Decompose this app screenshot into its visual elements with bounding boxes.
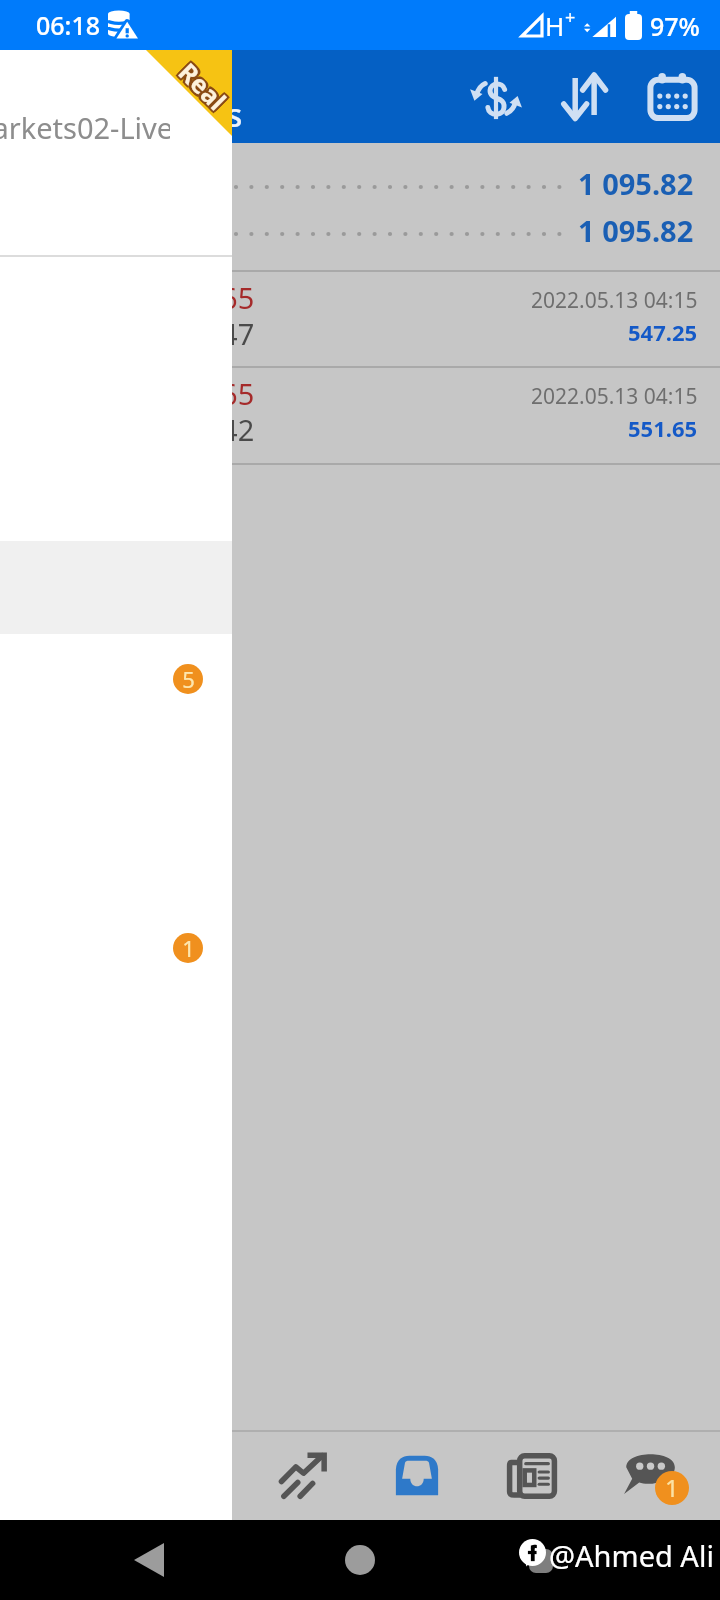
button[interactable]: Messages [592, 1432, 720, 1520]
staticText: + [565, 5, 576, 30]
staticText: ICMarkets02-Live [0, 108, 170, 147]
staticText: 1 [665, 1471, 679, 1504]
staticText: Real [172, 52, 234, 114]
button[interactable]: Sort [540, 53, 628, 141]
staticText: 551.65 [628, 413, 698, 443]
staticText: 1 [182, 933, 195, 963]
button[interactable]: Back [134, 1543, 164, 1577]
button[interactable]: News [472, 1432, 592, 1520]
staticText: 1 095.82 [578, 164, 694, 203]
staticText: 1 095.82 [578, 211, 694, 250]
staticText: Real [175, 55, 237, 117]
staticText: Real [172, 55, 234, 117]
staticText: H [545, 8, 565, 43]
button[interactable]: Quotes [245, 1432, 362, 1520]
staticText: Real [170, 53, 233, 116]
staticText: 06:18 [36, 8, 101, 42]
button[interactable]: Currency exchange [452, 53, 540, 141]
staticText: 1.05565 [147, 278, 255, 317]
button[interactable]: Trade [362, 1432, 472, 1520]
staticText: 97% [650, 9, 700, 43]
staticText: 2022.05.13 04:15 [531, 382, 698, 411]
staticText: 2022.05.13 04:15 [531, 286, 698, 315]
staticText: 1.05342 [147, 410, 255, 449]
staticText: Real [170, 56, 233, 118]
staticText: 1.05565 [147, 374, 255, 413]
staticText: Real [173, 56, 235, 118]
staticText: 5 [182, 664, 195, 694]
button[interactable]: 5 [0, 634, 232, 723]
staticText: 547.25 [628, 317, 698, 347]
staticText: Positions [103, 93, 243, 137]
staticText: 1.05347 [147, 314, 255, 353]
staticText: @Ahmed Ali [549, 1536, 714, 1575]
staticText: Real [172, 58, 234, 120]
button[interactable]: 1 [0, 903, 232, 992]
staticText: Real [173, 53, 235, 116]
button[interactable]: Calendar [628, 53, 716, 141]
staticText: Real [169, 55, 231, 117]
button[interactable]: Home [345, 1545, 375, 1575]
